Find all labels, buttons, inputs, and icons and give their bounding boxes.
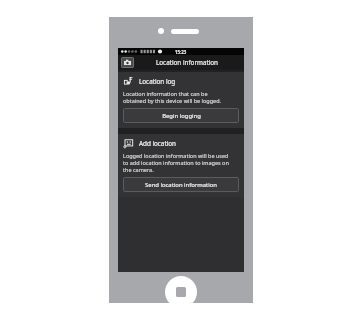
button[interactable]: Back to camera xyxy=(121,57,134,68)
staticText: Send location information xyxy=(145,181,217,189)
staticText: Add location xyxy=(139,139,176,148)
staticText: Location log xyxy=(139,77,176,86)
staticText: Location information xyxy=(156,58,219,67)
button[interactable]: Send location information xyxy=(123,177,239,192)
button[interactable]: Begin logging xyxy=(123,108,239,123)
button[interactable]: Home xyxy=(165,276,197,308)
staticText: Begin logging xyxy=(162,112,201,120)
staticText: Location information that can be obtaine… xyxy=(123,90,222,104)
staticText: Logged location information will be used… xyxy=(123,152,229,173)
staticText: 15:23 xyxy=(175,49,187,55)
